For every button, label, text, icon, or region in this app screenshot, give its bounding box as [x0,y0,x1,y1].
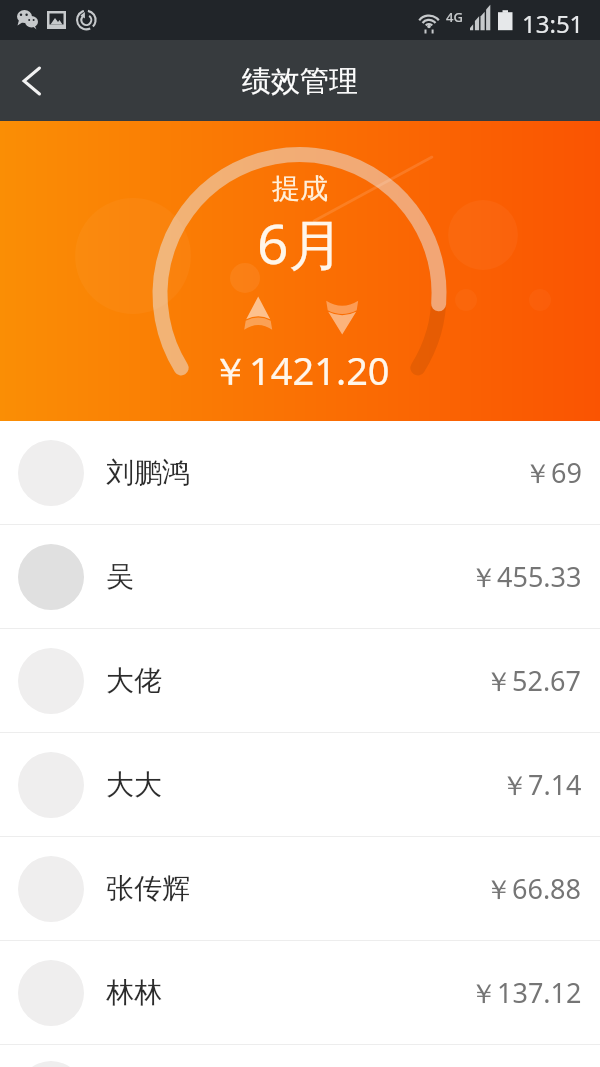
staticText: 大大 [106,767,162,802]
staticText: 大佬 [106,663,162,698]
button[interactable]: Back [0,40,66,121]
staticText: ￥7.14 [501,766,582,803]
staticText: 4G [446,8,463,26]
staticText: 6月 [257,205,344,280]
staticText: 林林 [106,975,162,1010]
button[interactable]: 大大 [0,733,600,836]
staticText: 绩效管理 [242,63,358,100]
staticText: 13:51 [522,7,584,40]
button[interactable]: 大佬 [0,629,600,732]
staticText: ￥69 [524,454,582,491]
staticText: 张传辉 [106,871,190,906]
staticText: ￥66.88 [485,870,582,907]
button[interactable]: 吴 [0,525,600,628]
button[interactable]: 刘鹏鸿 [0,421,600,524]
staticText: ￥52.67 [485,662,582,699]
staticText: ￥455.33 [470,558,582,595]
staticText: 提成 [272,171,328,206]
button[interactable]: 张传辉 [0,837,600,940]
staticText: 刘鹏鸿 [106,455,190,490]
button[interactable]: 林林 [0,941,600,1044]
staticText: ￥1421.20 [211,344,390,396]
staticText: 吴 [106,559,134,594]
staticText: ￥137.12 [470,974,582,1011]
